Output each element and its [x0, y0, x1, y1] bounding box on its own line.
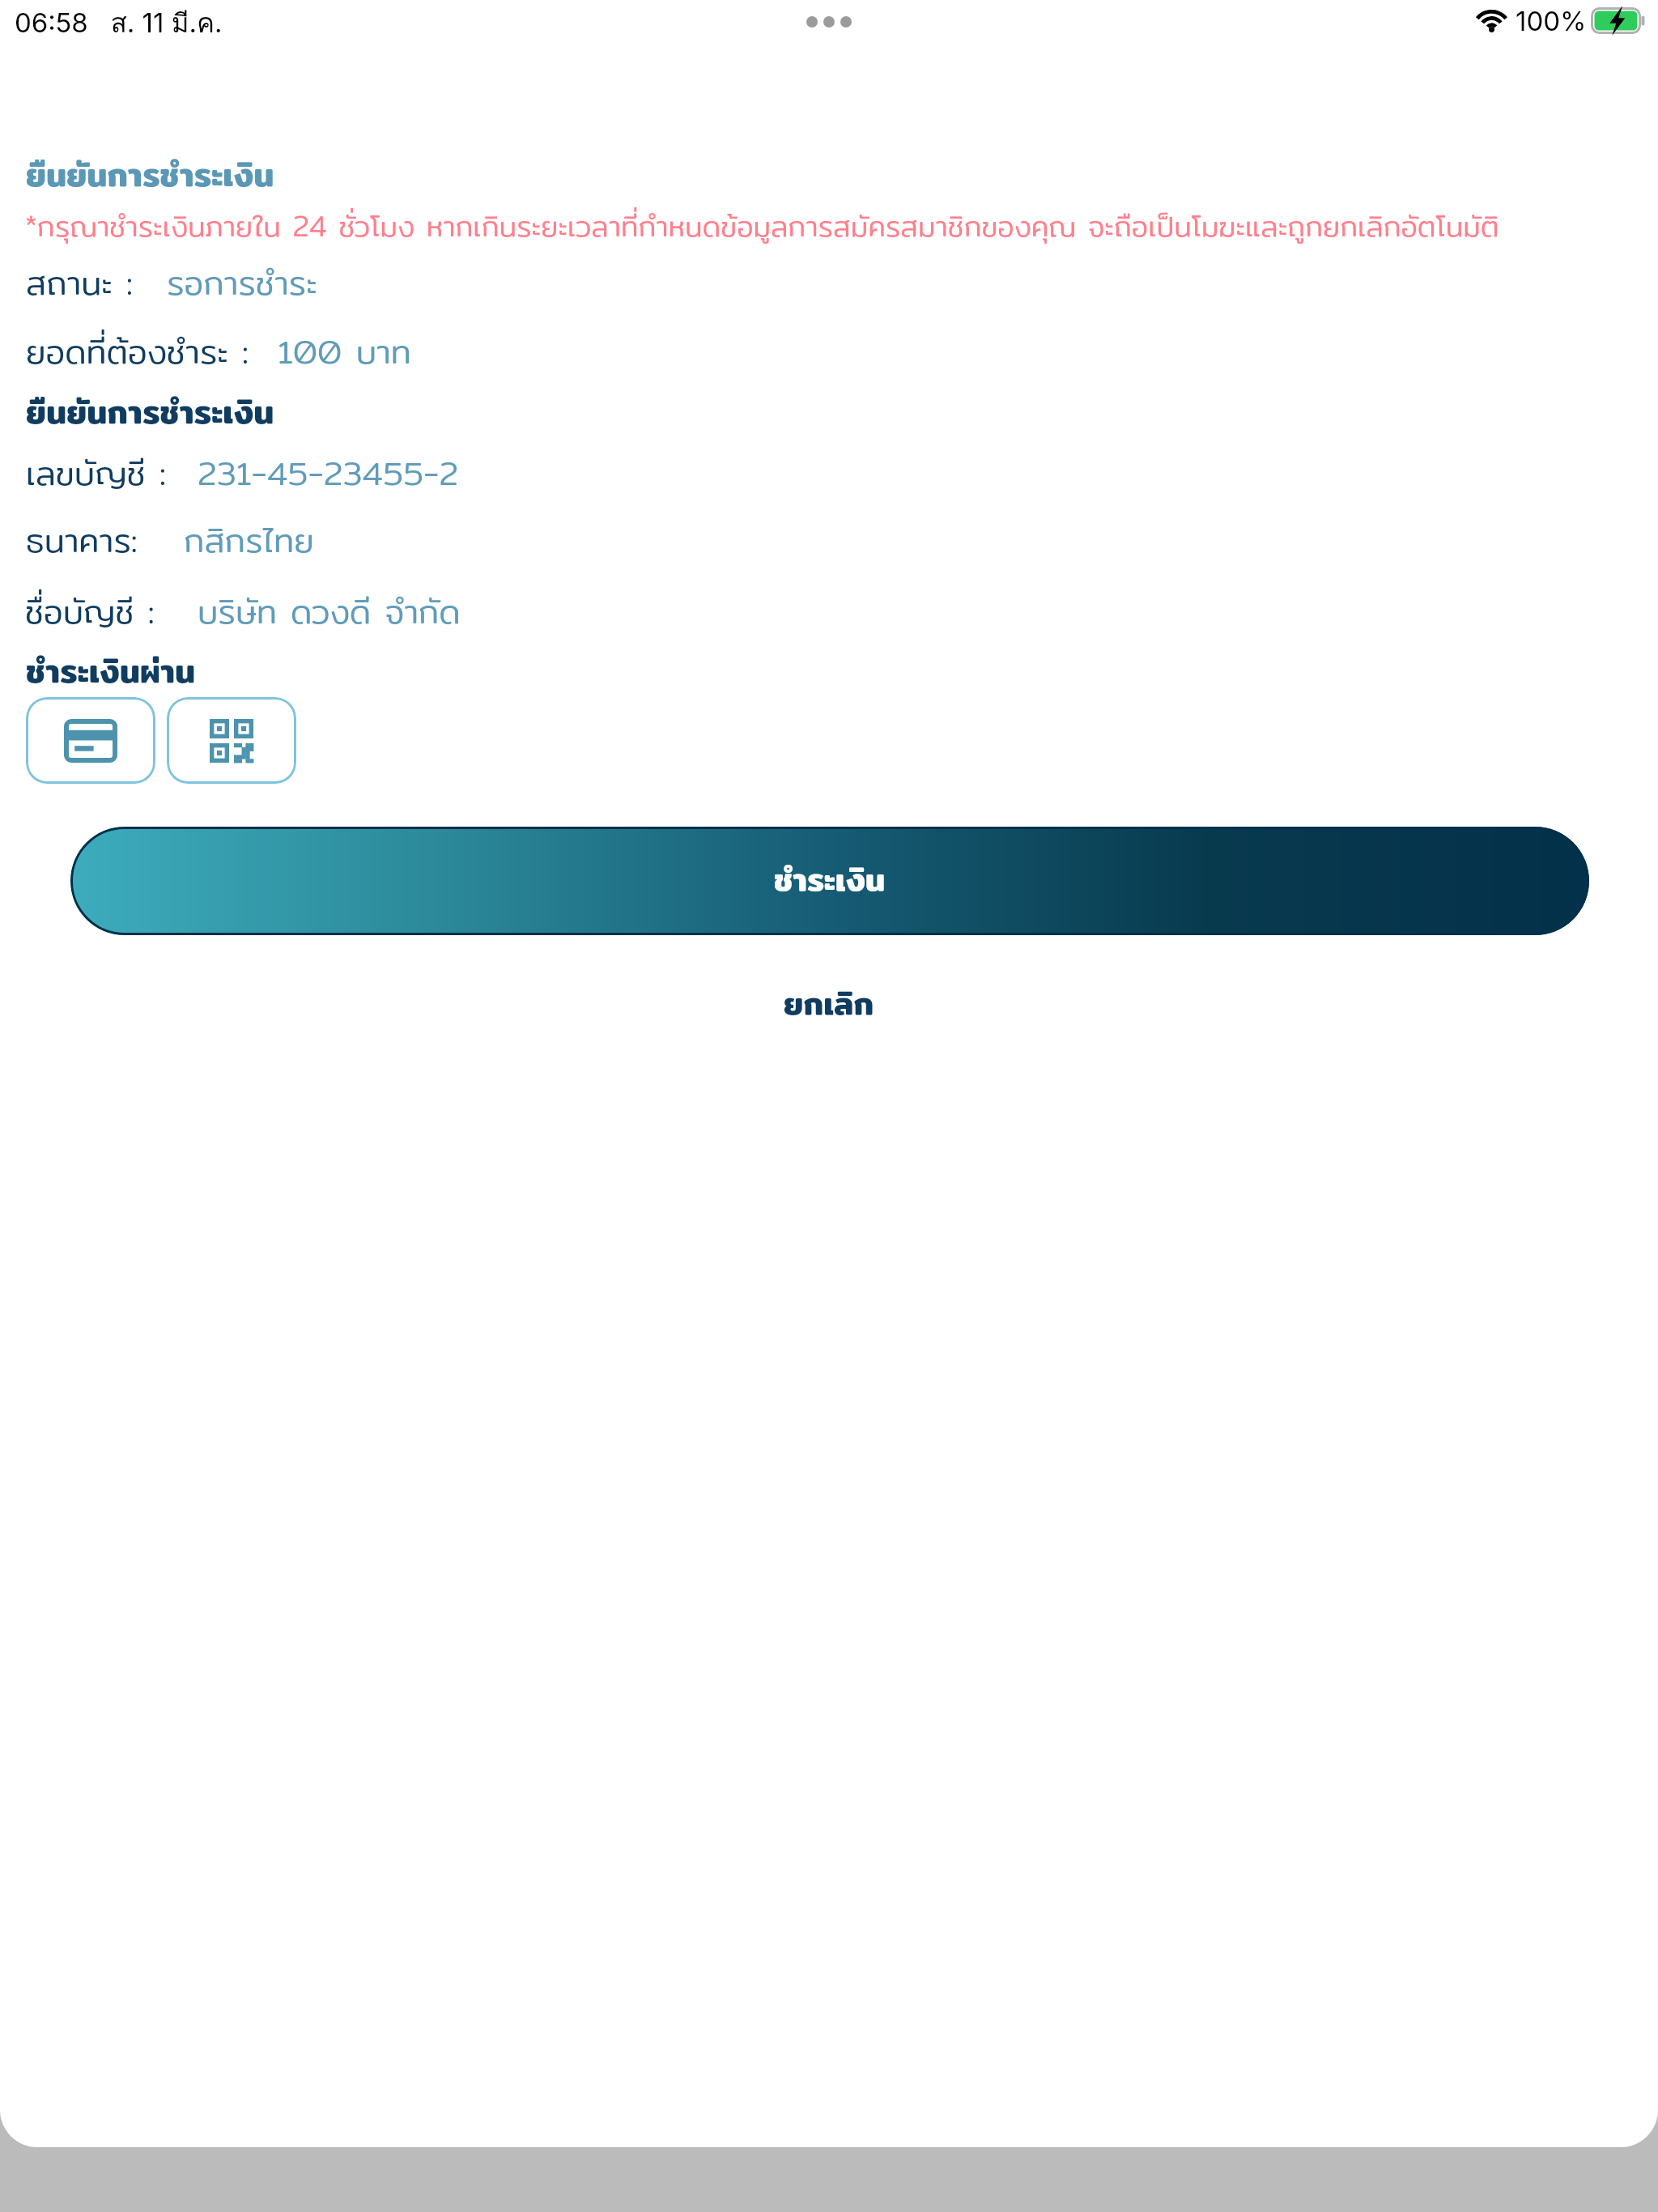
staticText: ยอดที่ต้องชำระ : [26, 325, 249, 377]
staticText: เลขบัญชี : [26, 447, 166, 499]
button[interactable]: QR code payment [167, 697, 296, 784]
staticText: บริษัท ดวงดี จำกัด [198, 585, 461, 637]
staticText: 100% [1516, 5, 1587, 37]
staticText: *กรุณาชำระเงินภายใน 24 ชั่วโมง หากเกินระ… [25, 203, 1499, 248]
staticText: ยืนยันการชำระเงิน [26, 386, 274, 437]
staticText: รอการชำระ [167, 257, 317, 308]
staticText: 231-45-23455-2 [198, 447, 458, 499]
staticText: กสิกรไทย [184, 514, 314, 566]
staticText: 06:58 ส. 11 มี.ค. [15, 2, 223, 44]
button[interactable]: Credit card payment [26, 697, 155, 784]
staticText: ชื่อบัญชี : [25, 585, 155, 637]
staticText: ชำระเงินผ่าน [26, 645, 196, 696]
button[interactable]: ยกเลิก [743, 963, 915, 1042]
staticText: ธนาคาร: [26, 514, 138, 566]
staticText: ชำระเงิน [774, 854, 886, 904]
staticText: ยืนยันการชำระเงิน [26, 149, 274, 200]
staticText: 100 บาท [278, 325, 411, 377]
staticText: สถานะ : [26, 257, 133, 308]
button[interactable]: ชำระเงิน [70, 827, 1589, 935]
staticText: ยกเลิก [784, 978, 874, 1027]
